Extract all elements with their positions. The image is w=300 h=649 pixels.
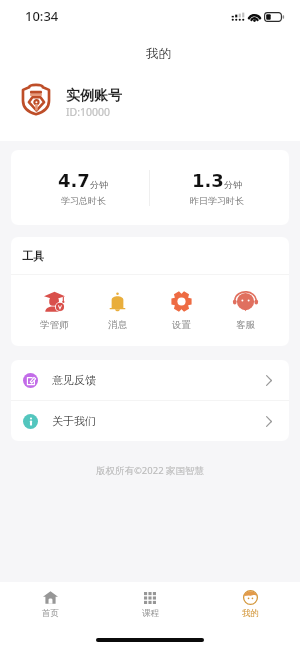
staticText: 10:34 (25, 7, 59, 25)
staticText: 我的 (146, 46, 171, 62)
staticText: 首页 (42, 608, 59, 619)
staticText: 意见反馈 (52, 373, 96, 387)
staticText: 实例账号 (66, 87, 122, 105)
staticText: 昨日学习时长 (190, 195, 244, 206)
button[interactable]: 关于我们 (11, 401, 289, 441)
staticText: 课程 (142, 608, 159, 619)
staticText: 消息 (108, 319, 127, 331)
staticText: 版权所有©2022 家国智慧 (0, 464, 300, 477)
button[interactable]: 消息 (86, 291, 149, 331)
staticText: ID:10000 (66, 105, 111, 119)
button[interactable]: 学管师 (23, 291, 86, 331)
button[interactable]: 我的 (200, 582, 300, 627)
staticText: 4.7 (58, 170, 90, 191)
staticText: 分钟 (224, 179, 242, 190)
button[interactable]: 实例账号 (0, 66, 300, 141)
button[interactable]: 客服 (213, 291, 277, 331)
staticText: 设置 (172, 319, 191, 331)
button[interactable]: 首页 (0, 582, 100, 627)
staticText: 工具 (22, 249, 44, 263)
staticText: 关于我们 (52, 414, 96, 428)
staticText: 我的 (242, 608, 259, 619)
staticText: 1.3 (192, 170, 224, 191)
button[interactable]: 设置 (149, 291, 213, 331)
staticText: 分钟 (90, 179, 108, 190)
button[interactable]: 意见反馈 (11, 360, 289, 400)
button[interactable]: 1.3 (150, 170, 289, 206)
staticText: 学管师 (40, 319, 69, 331)
button[interactable]: 4.7 (11, 170, 149, 206)
button[interactable]: 课程 (100, 582, 200, 627)
staticText: 学习总时长 (61, 195, 106, 206)
staticText: 客服 (236, 319, 255, 331)
